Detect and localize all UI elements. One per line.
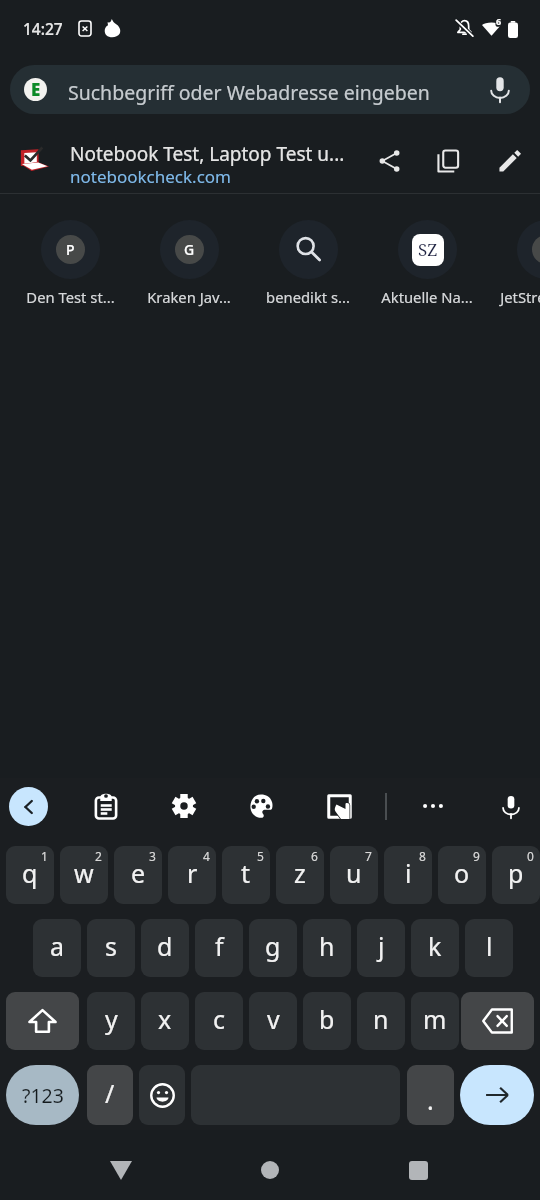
button[interactable]: More options	[412, 785, 454, 827]
staticText: JetStream 2...	[500, 287, 540, 307]
button[interactable]: Settings	[163, 785, 205, 827]
staticText: q	[22, 856, 38, 890]
button[interactable]: ?123	[6, 1065, 79, 1125]
staticText: c	[213, 1002, 226, 1036]
staticText: r	[187, 856, 198, 890]
button[interactable]: Voice input	[490, 785, 532, 827]
button[interactable]: Enter	[460, 1065, 534, 1125]
staticText: 7	[365, 848, 372, 864]
button[interactable]: f	[195, 919, 243, 977]
button[interactable]: i	[384, 846, 432, 904]
button[interactable]: Clipboard	[85, 785, 127, 827]
button[interactable]: Recents	[383, 1135, 453, 1200]
button[interactable]: n	[357, 992, 405, 1050]
staticText: Kraken Jav...	[147, 287, 231, 307]
button[interactable]: Share	[368, 139, 412, 183]
staticText: t	[241, 856, 251, 890]
staticText: 14:27	[23, 18, 63, 39]
button[interactable]: Back	[86, 1135, 156, 1200]
staticText: o	[454, 856, 470, 890]
staticText: Suchbegriff oder Webadresse eingeben	[68, 79, 430, 106]
staticText: y	[105, 1002, 118, 1036]
button[interactable]: p	[492, 846, 540, 904]
button[interactable]: o	[438, 846, 486, 904]
button[interactable]: r	[168, 846, 216, 904]
staticText: a	[50, 929, 65, 963]
staticText: f	[215, 929, 224, 963]
button[interactable]: d	[141, 919, 189, 977]
staticText: 1	[41, 848, 48, 864]
staticText: G	[184, 240, 195, 259]
staticText: w	[74, 856, 94, 890]
staticText: z	[294, 856, 306, 890]
button[interactable]: Copy	[427, 139, 471, 183]
button[interactable]: Notebook Test, Laptop Test u...	[0, 130, 540, 192]
button[interactable]: c	[195, 992, 243, 1050]
staticText: Notebook Test, Laptop Test u...	[70, 141, 360, 167]
staticText: e	[131, 856, 146, 890]
staticText: j	[378, 929, 385, 963]
button[interactable]: z	[276, 846, 324, 904]
staticText: 5	[257, 848, 264, 864]
staticText: benedikt s...	[266, 287, 350, 307]
staticText: E	[31, 78, 41, 101]
staticText: x	[158, 1002, 172, 1036]
button[interactable]: P	[0, 200, 140, 312]
button[interactable]: Home	[235, 1135, 305, 1200]
staticText: Den Test st...	[26, 287, 115, 307]
staticText: /	[105, 1076, 115, 1110]
button[interactable]: w	[60, 846, 108, 904]
button[interactable]: y	[87, 992, 135, 1050]
button[interactable]: k	[411, 919, 459, 977]
button[interactable]: q	[6, 846, 54, 904]
button[interactable]: Slash	[87, 1065, 133, 1125]
staticText: d	[157, 929, 173, 963]
staticText: 6	[311, 848, 318, 864]
button[interactable]: Edit	[488, 139, 532, 183]
button[interactable]: g	[249, 919, 297, 977]
staticText: SZ	[418, 238, 438, 261]
staticText: 3	[149, 848, 156, 864]
button[interactable]: x	[141, 992, 189, 1050]
button[interactable]: s	[87, 919, 135, 977]
button[interactable]: t	[222, 846, 270, 904]
staticText: P	[66, 240, 75, 259]
staticText: m	[423, 1002, 447, 1036]
button[interactable]: benedikt s...	[238, 200, 378, 312]
button[interactable]: v	[249, 992, 297, 1050]
button[interactable]: G	[119, 200, 259, 312]
button[interactable]: E	[10, 65, 530, 114]
staticText: 4	[203, 848, 210, 864]
staticText: ?123	[22, 1082, 64, 1109]
button[interactable]: JetStream 2...	[476, 200, 540, 312]
button[interactable]: a	[33, 919, 81, 977]
button[interactable]: Back	[9, 787, 48, 826]
button[interactable]: Emoji	[139, 1065, 185, 1125]
button[interactable]: Voice search	[480, 69, 520, 109]
staticText: u	[346, 856, 362, 890]
staticText: l	[486, 929, 493, 963]
staticText: notebookcheck.com	[70, 165, 232, 188]
staticText: b	[319, 1002, 335, 1036]
button[interactable]: Handwriting input	[318, 785, 360, 827]
staticText: p	[508, 856, 524, 890]
staticText: g	[265, 929, 281, 963]
button[interactable]: e	[114, 846, 162, 904]
button[interactable]: SZ	[357, 200, 497, 312]
button[interactable]: j	[357, 919, 405, 977]
staticText: .	[427, 1083, 434, 1117]
button[interactable]: u	[330, 846, 378, 904]
button[interactable]: Shift	[6, 992, 79, 1050]
staticText: v	[267, 1002, 280, 1036]
staticText: s	[105, 929, 117, 963]
staticText: 8	[419, 848, 426, 864]
button[interactable]: Backspace	[461, 992, 534, 1050]
button[interactable]: h	[303, 919, 351, 977]
button[interactable]: b	[303, 992, 351, 1050]
button[interactable]: Theme	[240, 785, 282, 827]
staticText: 2	[95, 848, 102, 864]
button[interactable]: Period	[407, 1065, 454, 1125]
button[interactable]: l	[465, 919, 513, 977]
button[interactable]: m	[411, 992, 459, 1050]
